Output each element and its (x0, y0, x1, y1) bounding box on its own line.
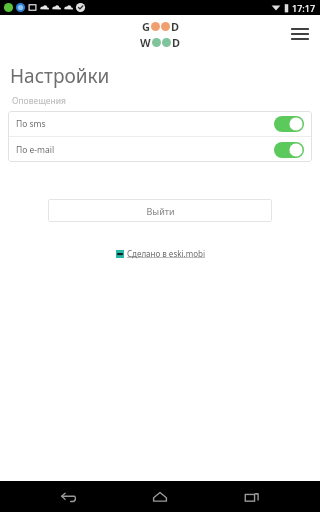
staticText: W (140, 35, 151, 50)
button[interactable]: Home (132, 481, 188, 512)
staticText: По e-mail (16, 144, 55, 156)
staticText: Выйти (146, 205, 175, 217)
staticText: D (172, 35, 181, 50)
button[interactable]: По sms (8, 111, 312, 136)
button[interactable]: Сделано в eski.mobi (116, 248, 205, 259)
staticText: Сделано в eski.mobi (127, 248, 205, 259)
staticText: G (142, 19, 150, 34)
button[interactable]: Recent apps (224, 481, 280, 512)
staticText: По sms (16, 118, 46, 130)
button[interactable]: Выйти (48, 199, 272, 222)
button[interactable]: Back (40, 481, 96, 512)
button[interactable]: Menu (286, 20, 314, 48)
button[interactable]: Toggle (274, 116, 304, 132)
button[interactable]: По e-mail (8, 137, 312, 162)
staticText: D (171, 19, 180, 34)
staticText: 17:17 (292, 2, 316, 14)
staticText: Оповещения (12, 95, 66, 107)
button[interactable]: Toggle (274, 142, 304, 158)
staticText: Настройки (10, 63, 110, 89)
